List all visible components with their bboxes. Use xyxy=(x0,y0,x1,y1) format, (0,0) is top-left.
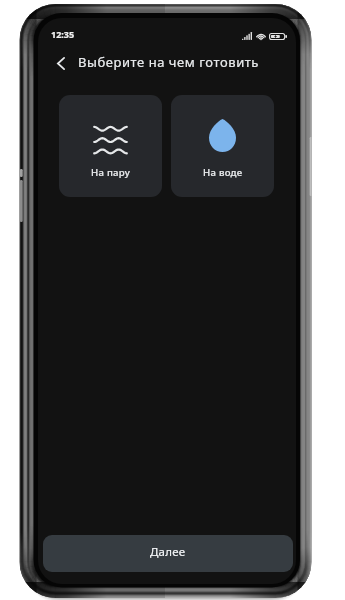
staticText: На воде xyxy=(203,166,243,179)
staticText: Выберите на чем готовить xyxy=(78,53,259,71)
staticText: На пару xyxy=(91,166,130,179)
button[interactable]: Назад xyxy=(47,50,74,77)
button[interactable]: На воде xyxy=(171,95,274,197)
button[interactable]: На пару xyxy=(59,95,162,197)
staticText: Далее xyxy=(150,544,186,560)
button[interactable]: Далее xyxy=(43,535,293,572)
staticText: 12:35 xyxy=(51,28,75,40)
